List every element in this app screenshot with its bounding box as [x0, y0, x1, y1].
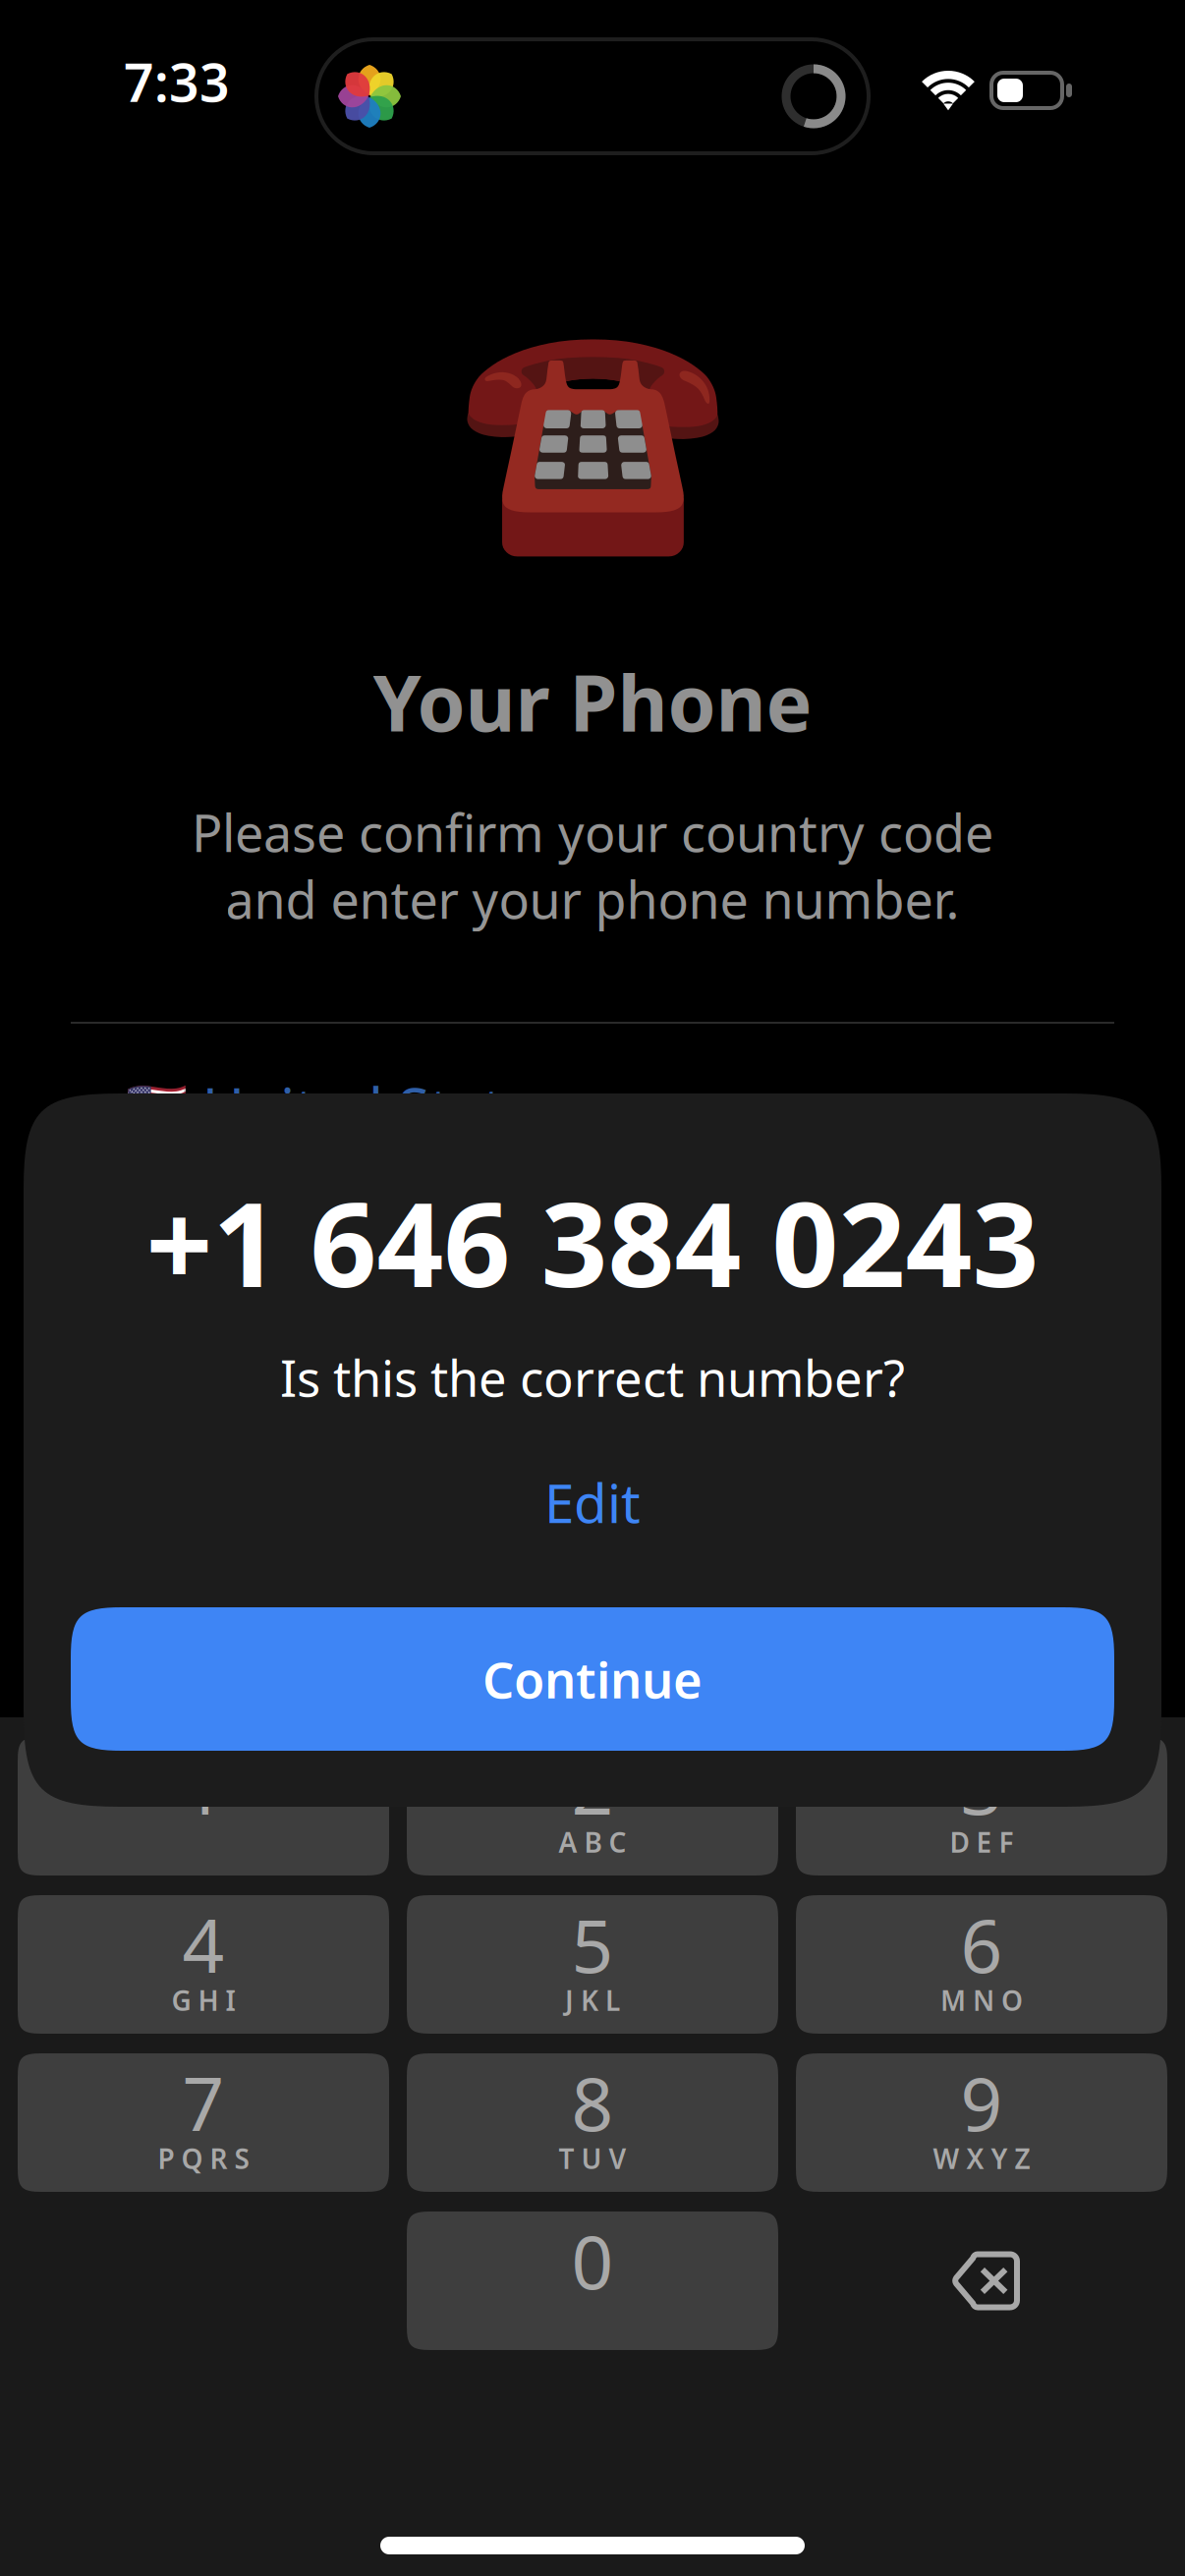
- button[interactable]: 6: [796, 1895, 1167, 2034]
- staticText: W X Y Z: [933, 2140, 1030, 2177]
- staticText: J K L: [565, 1982, 620, 2019]
- staticText: Edit: [544, 1467, 641, 1538]
- staticText: Your Phone: [373, 650, 812, 753]
- button[interactable]: 3: [796, 1737, 1167, 1876]
- staticText: 0: [571, 2212, 614, 2309]
- button[interactable]: 8: [407, 2053, 778, 2192]
- staticText: M N O: [940, 1982, 1023, 2019]
- button[interactable]: Continue: [71, 1607, 1114, 1751]
- staticText: 4: [182, 1896, 225, 1993]
- button[interactable]: 5: [407, 1895, 778, 2034]
- staticText: United States: [188, 1069, 563, 1145]
- staticText: 🇺🇸: [126, 1078, 188, 1136]
- button[interactable]: Delete: [796, 2212, 1167, 2350]
- staticText: +1 646 384 0243: [146, 1164, 1039, 1319]
- staticText: 2: [571, 1737, 614, 1835]
- staticText: D E F: [950, 1824, 1014, 1860]
- button[interactable]: 7: [18, 2053, 389, 2192]
- button[interactable]: 4: [18, 1895, 389, 2034]
- staticText: A B C: [559, 1824, 626, 1860]
- staticText: Is this the correct number?: [280, 1344, 905, 1411]
- staticText: T U V: [559, 2140, 626, 2177]
- staticText: 8: [571, 2054, 614, 2151]
- button[interactable]: 0: [407, 2212, 778, 2350]
- staticText: ☎️: [455, 306, 730, 564]
- staticText: 7:33: [124, 47, 230, 116]
- button[interactable]: 9: [796, 2053, 1167, 2192]
- staticText: 9: [960, 2054, 1003, 2151]
- button[interactable]: 2: [407, 1737, 778, 1876]
- button[interactable]: 1: [18, 1737, 389, 1876]
- staticText: G H I: [171, 1982, 235, 2019]
- staticText: 7: [182, 2054, 225, 2151]
- staticText: Continue: [482, 1646, 703, 1712]
- staticText: 5: [571, 1896, 614, 1993]
- staticText: 6: [960, 1896, 1003, 1993]
- staticText: 1: [182, 1737, 225, 1835]
- staticText: 3: [960, 1737, 1003, 1835]
- staticText: Please confirm your country code: [192, 798, 993, 866]
- button[interactable]: Edit: [503, 1459, 682, 1545]
- staticText: and enter your phone number.: [226, 865, 959, 933]
- staticText: P Q R S: [158, 2140, 249, 2177]
